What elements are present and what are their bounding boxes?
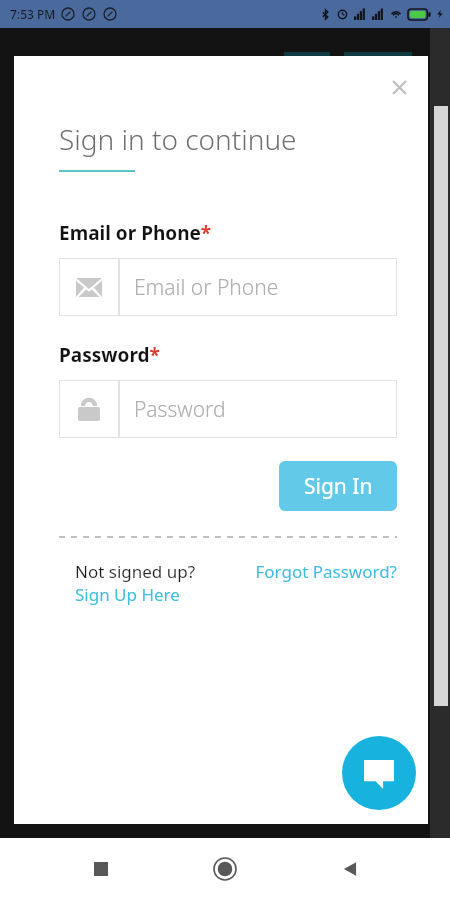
button[interactable]: Chat (342, 736, 416, 810)
button[interactable]: EN (344, 52, 412, 94)
button[interactable]: Forgot Password? (228, 560, 397, 583)
button[interactable]: Email or Phone (59, 258, 397, 316)
staticText: Password* (59, 342, 160, 368)
staticText: Password (134, 395, 226, 424)
button[interactable]: Home (201, 845, 249, 893)
staticText: Forgot Password? (228, 560, 397, 583)
staticText: Welcome (197, 124, 254, 142)
staticText: Sign in to continue (59, 120, 297, 158)
staticText: Not signed up?Sign Up Here (75, 560, 228, 606)
staticText: Email or Phone* (59, 220, 212, 246)
button[interactable]: Password (59, 380, 397, 438)
button[interactable]: Account (284, 52, 330, 94)
staticText: Sign In (304, 472, 373, 501)
button[interactable]: Recents (77, 845, 125, 893)
button[interactable]: Back (326, 845, 374, 893)
staticText: 7:53 PM (10, 6, 56, 22)
staticText: Email or Phone (134, 273, 279, 302)
button[interactable]: Not signed up?Sign Up Here (75, 560, 228, 606)
button[interactable]: Close (382, 70, 416, 104)
button[interactable]: Sign In (279, 461, 397, 511)
